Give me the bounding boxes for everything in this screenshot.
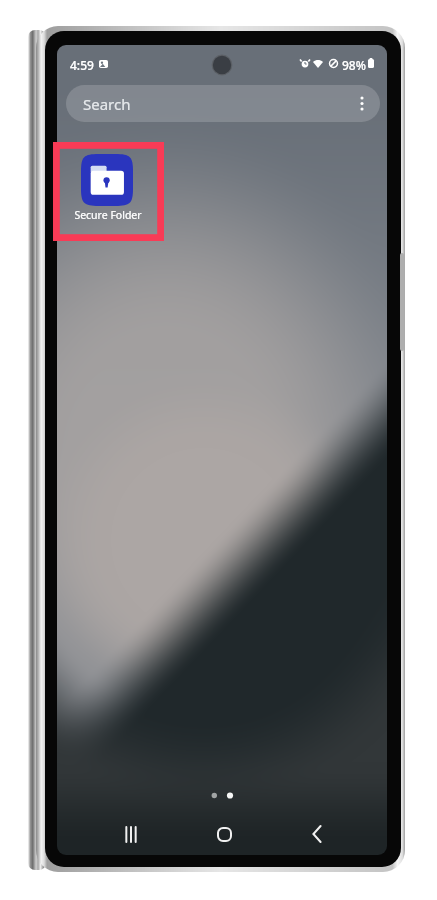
staticText: Search — [83, 94, 131, 114]
staticText: 4:59 — [70, 57, 94, 73]
button[interactable]: Home — [184, 814, 264, 854]
button[interactable]: Recent apps — [91, 814, 171, 854]
button[interactable]: Secure Folder — [61, 152, 154, 224]
button[interactable]: Back — [277, 814, 357, 854]
button[interactable]: Search — [66, 85, 380, 122]
staticText: Secure Folder — [74, 208, 142, 222]
staticText: 98% — [342, 57, 366, 73]
